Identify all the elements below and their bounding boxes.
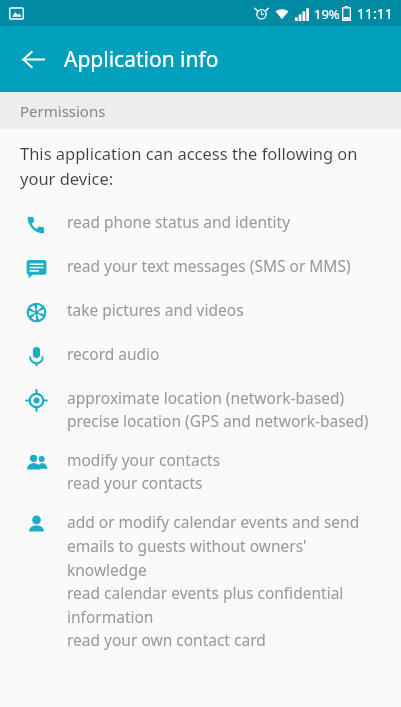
staticText: take pictures and videos [67,299,244,320]
staticText: 11:11 [357,4,393,23]
staticText: This application can access the followin… [20,142,383,190]
button[interactable]: take pictures and videos [0,290,401,334]
button[interactable]: Back [11,37,55,81]
button[interactable]: modify your contacts [0,440,401,502]
staticText: read phone status and identity [67,211,291,232]
button[interactable]: read phone status and identity [0,202,401,246]
staticText: precise location (GPS and network-based) [67,410,369,431]
staticText: Application info [64,45,219,74]
staticText: Permissions [20,101,106,121]
staticText: add or modify calendar events and send e… [67,511,389,580]
staticText: record audio [67,343,160,364]
staticText: approximate location (network-based) [67,387,345,408]
staticText: read your text messages (SMS or MMS) [67,255,351,276]
button[interactable]: read your text messages (SMS or MMS) [0,246,401,290]
staticText: read calendar events plus confidential i… [67,582,389,627]
staticText: read your own contact card [67,629,266,650]
staticText: modify your contacts [67,449,221,470]
button[interactable]: approximate location (network-based) [0,378,401,440]
button[interactable]: record audio [0,334,401,378]
staticText: read your contacts [67,472,203,493]
staticText: 19% [314,5,340,23]
button[interactable]: add or modify calendar events and send e… [0,502,401,659]
